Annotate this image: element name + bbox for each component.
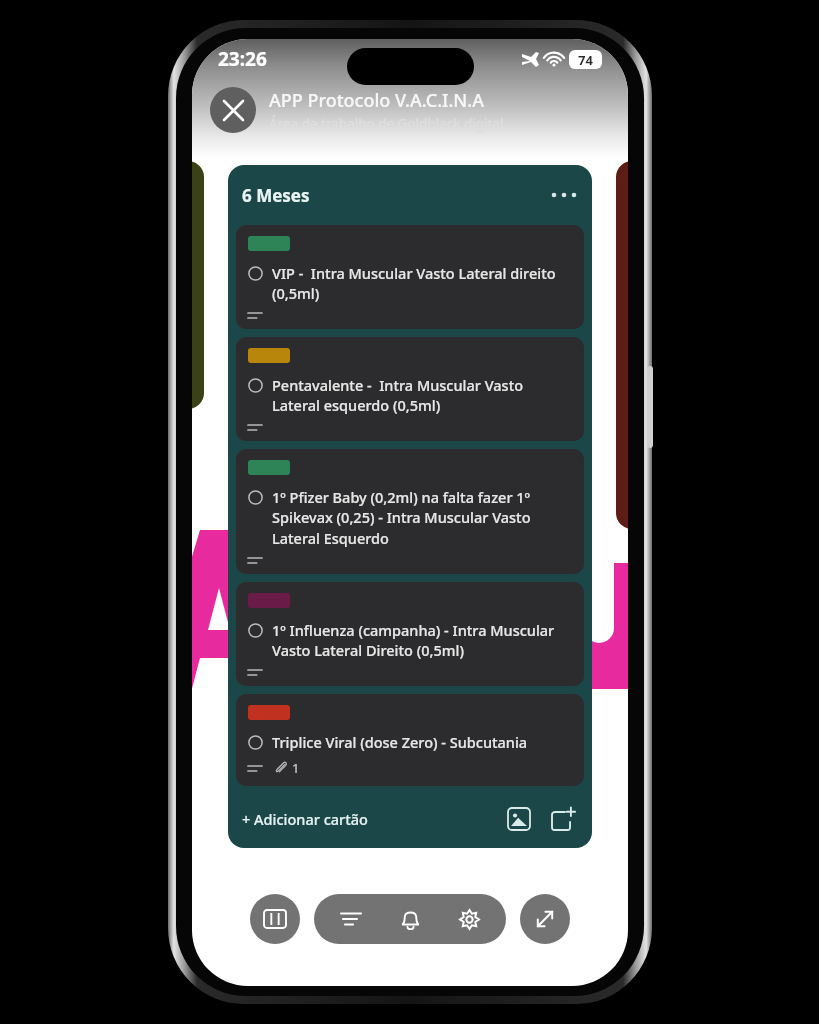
staticText: 74 (578, 51, 593, 69)
button[interactable]: Filtrar (329, 897, 373, 941)
staticText: + Adicionar cartão (242, 809, 368, 829)
button[interactable]: Adicionar imagem (504, 804, 534, 834)
staticText: VIP - Intra Muscular Vasto Lateral direi… (272, 263, 572, 304)
staticText: 1º Influenza (campanha) - Intra Muscular… (272, 620, 572, 661)
button[interactable]: 1º Influenza (campanha) - Intra Muscular… (236, 582, 584, 686)
staticText: Triplice Viral (dose Zero) - Subcutania (272, 732, 528, 752)
button[interactable]: Pentavalente - Intra Muscular Vasto Late… (236, 337, 584, 441)
staticText: 1º Pfizer Baby (0,2ml) na falta fazer 1º… (272, 487, 572, 549)
staticText: 23:26 (218, 46, 267, 72)
button[interactable]: 1º Pfizer Baby (0,2ml) na falta fazer 1º… (236, 449, 584, 574)
button[interactable]: Notificações (388, 897, 432, 941)
button[interactable]: Mais opções (550, 181, 578, 209)
staticText: Área de trabalho de Goldblack digital (269, 115, 504, 133)
button[interactable]: Triplice Viral (dose Zero) - Subcutania (236, 694, 584, 786)
button[interactable]: + Adicionar cartão (242, 809, 368, 829)
staticText: APP Protocolo V.A.C.I.N.A (269, 88, 485, 113)
staticText: 1 (292, 759, 300, 777)
button[interactable]: Configurações (447, 897, 491, 941)
staticText: Pentavalente - Intra Muscular Vasto Late… (272, 375, 572, 416)
button[interactable]: VIP - Intra Muscular Vasto Lateral direi… (236, 225, 584, 329)
button[interactable]: Fechar (210, 87, 256, 133)
button[interactable]: Tela cheia (520, 894, 570, 944)
button[interactable]: Novo cartão (548, 804, 578, 834)
button[interactable]: Quadros (250, 894, 300, 944)
staticText: 6 Meses (242, 184, 310, 207)
button[interactable]: 6 Meses (242, 181, 578, 209)
